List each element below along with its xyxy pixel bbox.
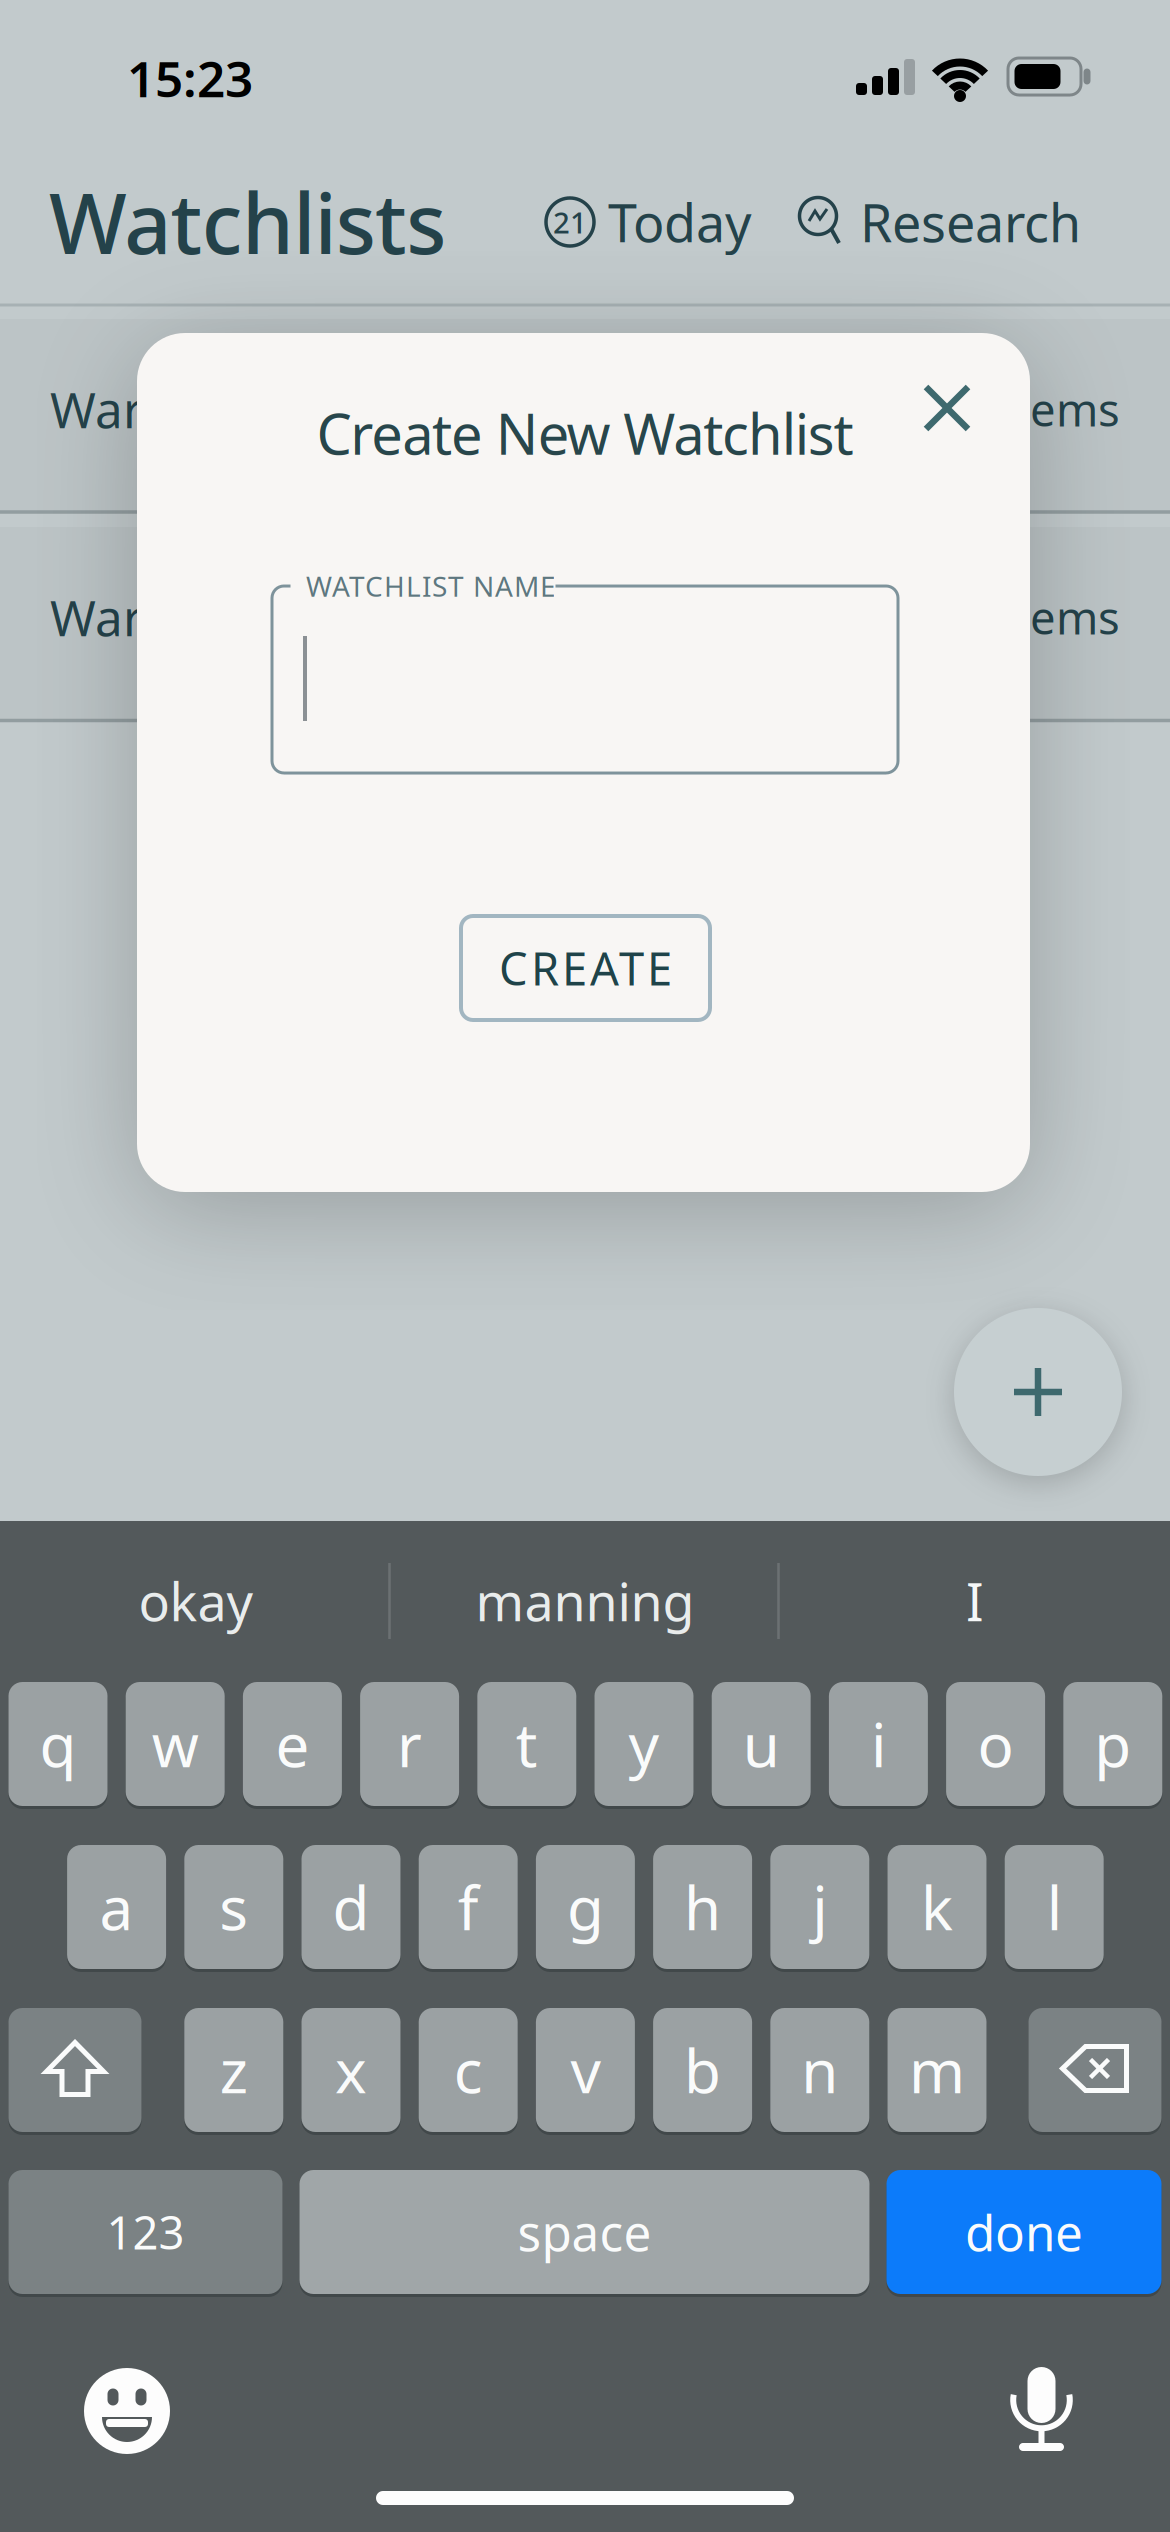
button[interactable]: s — [184, 1843, 283, 1970]
button[interactable]: k — [887, 1843, 986, 1970]
button[interactable]: CREATE — [461, 916, 710, 1020]
button[interactable]: Close — [907, 368, 987, 448]
staticText: CREATE — [499, 938, 672, 998]
button[interactable]: w — [126, 1680, 225, 1807]
button[interactable]: g — [536, 1843, 635, 1970]
button[interactable]: n — [770, 2006, 869, 2133]
button[interactable]: h — [653, 1843, 752, 1970]
staticText: Today — [608, 187, 752, 257]
staticText: n — [801, 2030, 838, 2110]
staticText: e — [275, 1704, 309, 1784]
staticText: p — [1094, 1704, 1131, 1784]
staticText: I — [966, 1566, 984, 1636]
staticText: g — [567, 1867, 604, 1947]
staticText: l — [1047, 1867, 1062, 1947]
button[interactable]: y — [594, 1680, 693, 1807]
staticText: i — [871, 1704, 886, 1784]
button[interactable]: Delete — [1028, 2006, 1161, 2133]
button[interactable]: Watchlist Name — [272, 586, 898, 773]
staticText: w — [152, 1704, 199, 1784]
staticText: u — [743, 1704, 780, 1784]
button[interactable]: Add Watchlist — [954, 1308, 1122, 1476]
staticText: 15:23 — [127, 45, 253, 111]
staticText: s — [219, 1867, 248, 1947]
button[interactable]: c — [419, 2006, 518, 2133]
button[interactable]: d — [301, 1843, 400, 1970]
staticText: Warren picks — [50, 376, 350, 442]
button[interactable]: I — [790, 1546, 1160, 1656]
staticText: d — [332, 1867, 369, 1947]
staticText: Warsaw tech — [50, 584, 347, 650]
button[interactable]: e — [243, 1680, 342, 1807]
staticText: y — [628, 1704, 659, 1784]
staticText: c — [454, 2030, 483, 2110]
staticText: h — [684, 1867, 721, 1947]
staticText: m — [909, 2030, 965, 2110]
staticText: done — [965, 2199, 1083, 2265]
staticText: a — [100, 1867, 134, 1947]
button[interactable]: Research — [798, 177, 1170, 267]
staticText: space — [517, 2199, 651, 2265]
button[interactable]: b — [653, 2006, 752, 2133]
button[interactable]: m — [887, 2006, 986, 2133]
button[interactable]: 123 — [8, 2168, 282, 2295]
button[interactable]: t — [477, 1680, 576, 1807]
staticText: t — [516, 1704, 538, 1784]
staticText: q — [39, 1704, 76, 1784]
staticText: z — [220, 2030, 248, 2110]
staticText: manning — [475, 1566, 694, 1636]
staticText: f — [458, 1867, 479, 1947]
staticText: WATCHLIST NAME — [306, 567, 556, 605]
button[interactable]: o — [946, 1680, 1045, 1807]
staticText: 21 — [553, 202, 587, 241]
staticText: 123 — [106, 2202, 184, 2262]
button[interactable]: 21 — [546, 177, 806, 267]
button[interactable]: Warren picks — [0, 319, 1170, 511]
button[interactable]: space — [299, 2168, 869, 2295]
staticText: o — [978, 1704, 1014, 1784]
button[interactable]: v — [536, 2006, 635, 2133]
staticText: Research — [860, 187, 1081, 257]
button[interactable]: Warsaw tech — [0, 527, 1170, 719]
staticText: j — [812, 1867, 827, 1947]
button[interactable]: u — [712, 1680, 811, 1807]
button[interactable]: q — [8, 1680, 107, 1807]
button[interactable]: r — [360, 1680, 459, 1807]
staticText: Create New Watchlist — [316, 396, 853, 470]
button[interactable]: a — [67, 1843, 166, 1970]
staticText: Watchlists — [49, 167, 446, 277]
button[interactable]: done — [886, 2168, 1161, 2295]
button[interactable]: Dictate — [981, 2346, 1101, 2466]
staticText: v — [570, 2030, 600, 2110]
button[interactable]: Emoji — [77, 2361, 177, 2461]
button[interactable]: okay — [11, 1546, 381, 1656]
button[interactable]: z — [184, 2006, 283, 2133]
staticText: okay — [138, 1566, 253, 1636]
staticText: b — [684, 2030, 721, 2110]
staticText: 7 items — [964, 379, 1120, 439]
button[interactable]: Shift — [8, 2006, 141, 2133]
button[interactable]: j — [770, 1843, 869, 1970]
button[interactable]: p — [1063, 1680, 1162, 1807]
staticText: r — [397, 1704, 422, 1784]
button[interactable]: x — [301, 2006, 400, 2133]
staticText: k — [921, 1867, 953, 1947]
staticText: 12 items — [938, 587, 1120, 647]
button[interactable]: f — [419, 1843, 518, 1970]
button[interactable]: l — [1005, 1843, 1104, 1970]
button[interactable]: manning — [400, 1546, 770, 1656]
button[interactable]: i — [829, 1680, 928, 1807]
staticText: x — [335, 2030, 367, 2110]
